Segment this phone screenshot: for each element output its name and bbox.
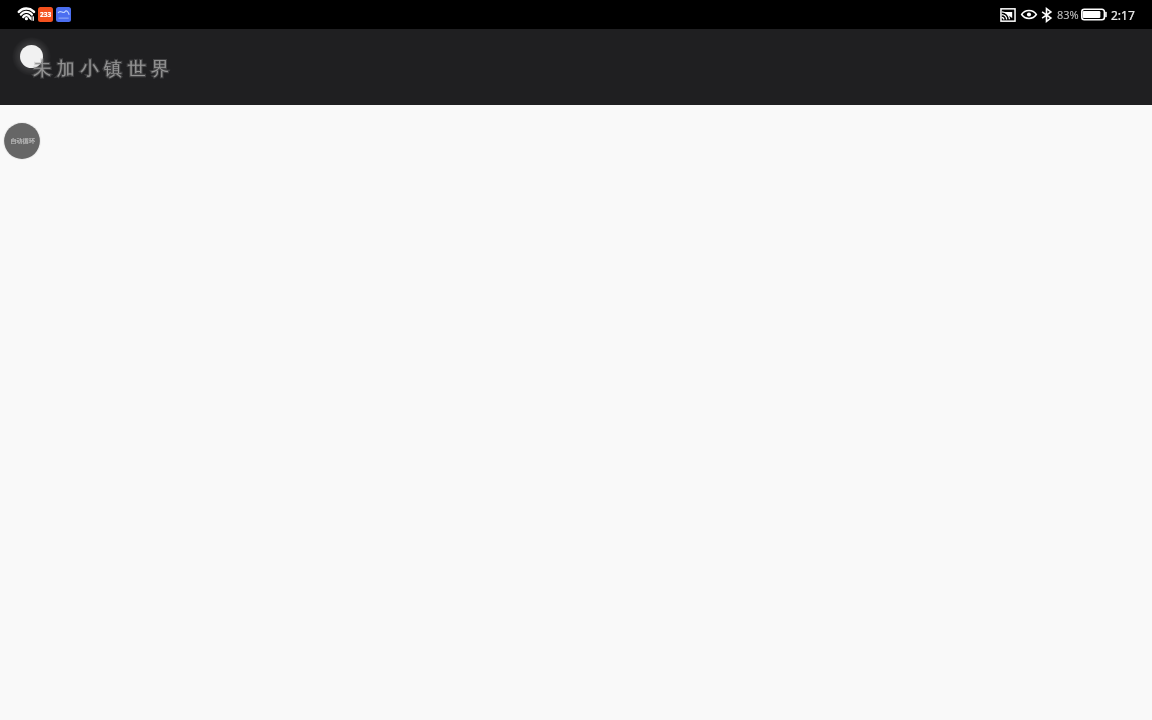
button[interactable]: Profile avatar xyxy=(12,37,51,76)
staticText: 未加小镇世界 xyxy=(33,57,175,80)
staticText: 83% xyxy=(1057,7,1079,22)
staticText: 自动循环 xyxy=(10,137,35,145)
staticText: 未加小镇世界 xyxy=(33,57,175,80)
button[interactable]: Auto loop mode xyxy=(3,122,41,160)
staticText: 233 xyxy=(40,10,52,19)
staticText: 2:17 xyxy=(1111,7,1135,23)
